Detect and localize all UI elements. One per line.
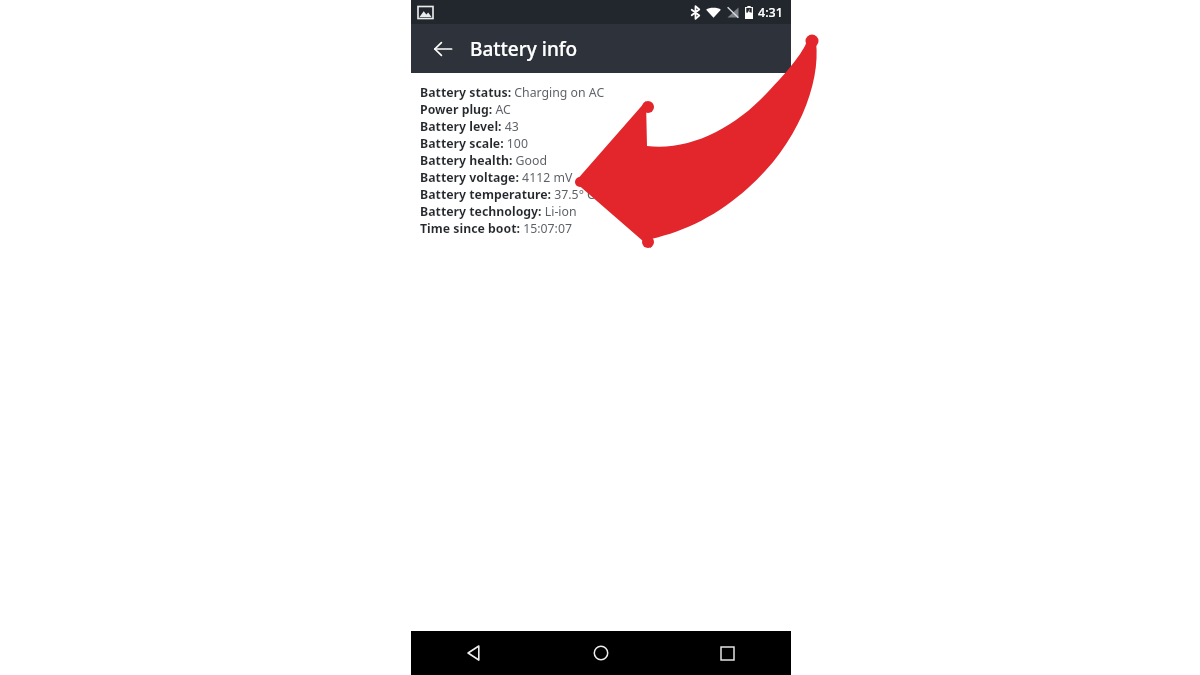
staticText: Battery voltage: 4112 mV	[420, 169, 573, 186]
button[interactable]: Time since boot: 15:07:07	[420, 220, 800, 237]
staticText: Battery info	[470, 36, 578, 62]
staticText: 4:31	[758, 4, 783, 21]
button[interactable]: Battery scale: 100	[420, 135, 800, 152]
staticText: Battery health: Good	[420, 152, 548, 169]
button[interactable]: Battery health: Good	[420, 152, 800, 169]
button[interactable]: Navigate up	[422, 28, 464, 70]
staticText: Battery level: 43	[420, 118, 519, 135]
button[interactable]: Home	[537, 631, 664, 675]
button[interactable]: Battery voltage: 4112 mV	[420, 169, 800, 186]
staticText: Power plug: AC	[420, 101, 511, 118]
staticText: Battery technology: Li-ion	[420, 203, 577, 220]
staticText: Time since boot: 15:07:07	[420, 220, 572, 237]
staticText: Battery temperature: 37.5° C	[420, 186, 595, 203]
button[interactable]: Battery status: Charging on AC	[420, 84, 800, 101]
staticText: Battery scale: 100	[420, 135, 528, 152]
button[interactable]: Power plug: AC	[420, 101, 800, 118]
button[interactable]: Back	[411, 631, 537, 675]
staticText: Battery status: Charging on AC	[420, 84, 605, 101]
button[interactable]: Recent apps	[664, 631, 791, 675]
button[interactable]: Battery level: 43	[420, 118, 800, 135]
button[interactable]: Battery temperature: 37.5° C	[420, 186, 800, 203]
button[interactable]: Battery technology: Li-ion	[420, 203, 800, 220]
